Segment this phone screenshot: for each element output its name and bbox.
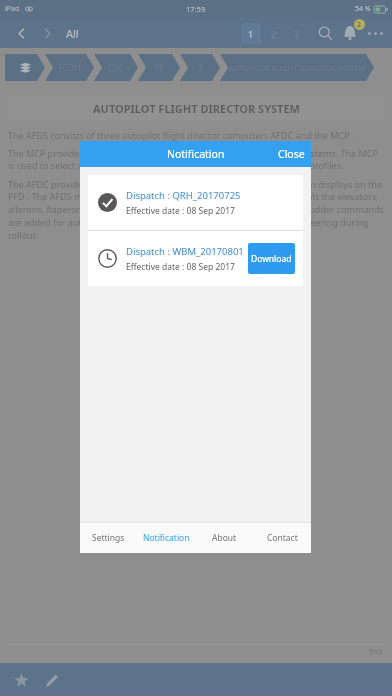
staticText: Notification — [167, 147, 225, 161]
button[interactable]: Download — [248, 243, 295, 274]
staticText: Close — [278, 147, 305, 161]
staticText: Notification — [143, 532, 190, 544]
button[interactable]: Notifications — [337, 20, 363, 46]
staticText: The MCP provides control of the autopilo… — [8, 147, 384, 172]
staticText: 54 % — [355, 4, 371, 14]
staticText: The AFDS consists of three autopilot fli… — [8, 129, 355, 141]
button[interactable]: FCOM — [45, 54, 94, 81]
button[interactable]: Forward — [36, 22, 58, 44]
button[interactable]: 1 — [241, 23, 261, 44]
staticText: 1 — [248, 28, 254, 40]
button[interactable]: AUTOPILOT FLIGHT DIRECTOR SYSTEM — [220, 54, 374, 81]
button[interactable]: Close — [278, 141, 305, 167]
button[interactable]: Back — [10, 22, 32, 44]
staticText: AUTOPILOT FLIGHT DIRECTOR SYSTEM — [229, 63, 365, 73]
button[interactable]: Settings — [80, 523, 137, 553]
button[interactable]: Dispatch : QRH_20170725 — [88, 175, 303, 230]
button[interactable]: Favorite — [8, 667, 34, 693]
button[interactable]: Search — [313, 21, 337, 45]
button[interactable]: 3 — [180, 54, 220, 81]
button[interactable]: Notification — [137, 523, 195, 553]
staticText: DSC — [108, 62, 124, 73]
staticText: iPad — [5, 4, 20, 14]
staticText: 17:59 — [186, 4, 206, 14]
button[interactable]: More options — [363, 21, 387, 45]
button[interactable]: Annotate — [38, 667, 64, 693]
staticText: Dispatch : QRH_20170725 — [126, 189, 241, 202]
staticText: 3 — [294, 28, 300, 40]
staticText: 03 — [154, 62, 164, 73]
button[interactable]: Dispatch : WBM_20170801 — [88, 231, 303, 286]
staticText: The AFDC provides the flight director co… — [8, 178, 384, 242]
staticText: 2 — [271, 28, 277, 40]
staticText: Effective date : 08 Sep 2017 — [126, 261, 235, 273]
button[interactable]: DSC — [94, 54, 138, 81]
button[interactable]: Contact — [253, 523, 311, 553]
staticText: 3 — [198, 62, 203, 73]
staticText: All — [66, 26, 79, 41]
staticText: FCOM — [58, 62, 81, 73]
staticText: 2 — [357, 20, 362, 30]
button[interactable] — [5, 54, 45, 81]
staticText: Contact — [267, 532, 298, 544]
staticText: AUTOPILOT FLIGHT DIRECTOR SYSTEM — [93, 101, 300, 116]
staticText: Settings — [92, 532, 125, 544]
staticText: Download — [251, 253, 292, 265]
staticText: Dispatch : WBM_20170801 — [126, 245, 244, 258]
staticText: About — [212, 532, 237, 544]
staticText: Effective date : 08 Sep 2017 — [126, 205, 235, 217]
button[interactable]: 03 — [138, 54, 180, 81]
button[interactable]: About — [195, 523, 253, 553]
